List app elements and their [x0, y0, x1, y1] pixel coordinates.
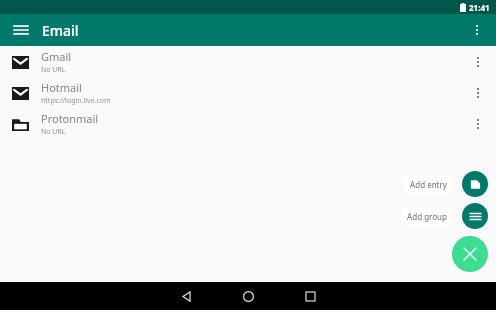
button[interactable]: Add group [462, 203, 488, 229]
button[interactable]: Add group [401, 208, 453, 225]
button[interactable]: Add entry [404, 176, 453, 193]
staticText: Add entry [410, 179, 447, 190]
staticText: https://login.live.com [41, 96, 111, 106]
staticText: Email [42, 21, 79, 40]
button[interactable]: Hotmail [0, 77, 496, 108]
button[interactable]: Gmail [0, 46, 496, 77]
staticText: Add group [407, 211, 447, 222]
button[interactable]: Home [226, 282, 270, 310]
button[interactable]: Close actions menu [452, 236, 488, 272]
staticText: No URL [41, 127, 66, 137]
button[interactable]: Protonmail [0, 108, 496, 139]
staticText: Gmail [41, 49, 72, 64]
staticText: 21:41 [469, 2, 490, 13]
button[interactable]: Entry options for Hotmail [465, 80, 491, 106]
button[interactable]: Open navigation menu [7, 16, 35, 44]
staticText: Hotmail [41, 80, 82, 95]
button[interactable]: Entry options for Protonmail [465, 111, 491, 137]
button[interactable]: Back [164, 282, 208, 310]
button[interactable]: Add entry [462, 171, 488, 197]
button[interactable]: Recent apps [288, 282, 332, 310]
button[interactable]: Entry options for Gmail [465, 49, 491, 75]
staticText: Protonmail [41, 111, 99, 126]
staticText: No URL [41, 65, 66, 75]
button[interactable]: More options [464, 17, 490, 43]
